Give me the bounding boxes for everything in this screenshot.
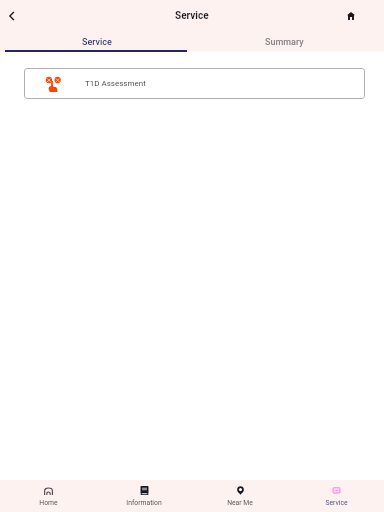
button[interactable]: Summary — [190, 31, 375, 51]
staticText: Near Me — [227, 499, 253, 507]
button[interactable]: Service — [5, 31, 190, 51]
staticText: Service — [175, 10, 209, 22]
button[interactable]: Home — [0, 480, 96, 512]
staticText: Service — [325, 499, 348, 507]
button[interactable]: Service — [288, 480, 384, 512]
staticText: Home — [39, 499, 58, 507]
button[interactable]: Back — [2, 7, 20, 25]
button[interactable]: Home — [342, 7, 360, 25]
button[interactable]: Information — [96, 480, 192, 512]
staticText: Service — [82, 37, 112, 48]
staticText: Information — [126, 499, 162, 507]
button[interactable]: Near Me — [192, 480, 288, 512]
staticText: T1D Assessment — [85, 79, 146, 88]
staticText: Summary — [265, 37, 304, 48]
button[interactable]: T1D Assessment — [24, 68, 365, 99]
